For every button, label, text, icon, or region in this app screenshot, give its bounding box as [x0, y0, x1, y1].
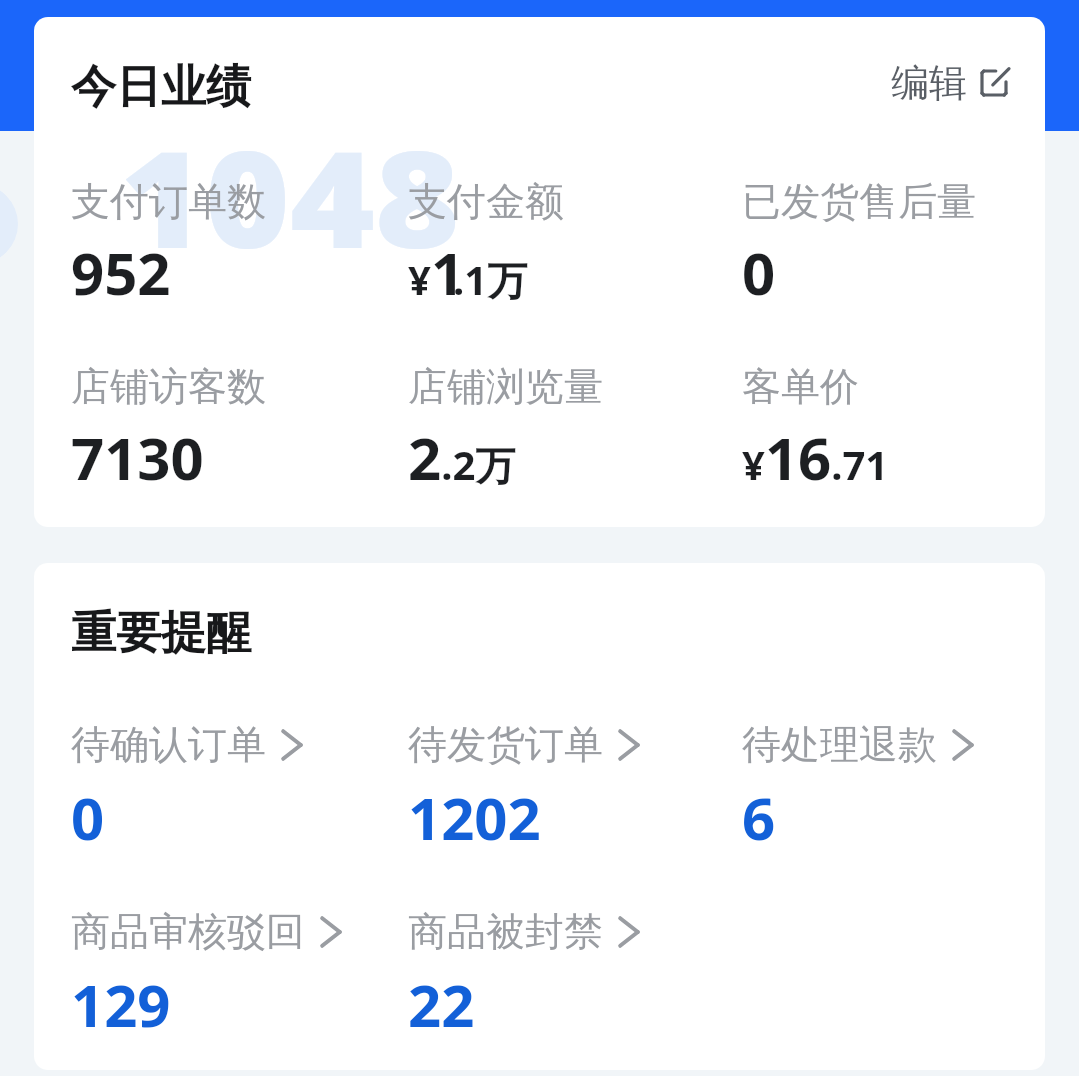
button[interactable]: 编辑: [891, 59, 1009, 107]
staticText: ¥16.71: [742, 418, 889, 497]
staticText: 今日业绩: [71, 59, 251, 116]
staticText: 1048: [120, 106, 460, 287]
staticText: 待发货订单: [408, 720, 603, 769]
staticText: 店铺访客数: [71, 362, 266, 411]
staticText: 客单价: [742, 362, 859, 411]
staticText: 编辑: [891, 59, 967, 107]
staticText: 已发货售后量: [742, 177, 976, 226]
staticText: 重要提醒: [71, 605, 251, 662]
staticText: 952: [71, 233, 171, 312]
staticText: 待处理退款: [742, 720, 937, 769]
staticText: 支付订单数: [71, 177, 266, 226]
other: 编辑: [979, 68, 1009, 98]
staticText: 2.2万: [408, 418, 516, 497]
staticText: 商品审核驳回: [71, 907, 305, 956]
button[interactable]: 商品被封禁: [408, 907, 738, 1044]
staticText: 支付金额: [408, 177, 564, 226]
staticText: 7130: [71, 418, 204, 497]
staticText: 1202: [408, 778, 541, 857]
staticText: 店铺浏览量: [408, 362, 603, 411]
staticText: 待确认订单: [71, 720, 266, 769]
staticText: 0: [71, 778, 105, 857]
button[interactable]: 待处理退款: [742, 720, 1045, 857]
staticText: ¥1.1万: [408, 233, 528, 312]
staticText: 0: [742, 233, 776, 312]
staticText: 商品被封禁: [408, 907, 603, 956]
button[interactable]: 商品审核驳回: [71, 907, 401, 1044]
button[interactable]: 待发货订单: [408, 720, 738, 857]
button[interactable]: 待确认订单: [71, 720, 401, 857]
staticText: 6: [742, 778, 776, 857]
staticText: 129: [71, 965, 171, 1044]
staticText: 22: [408, 965, 475, 1044]
